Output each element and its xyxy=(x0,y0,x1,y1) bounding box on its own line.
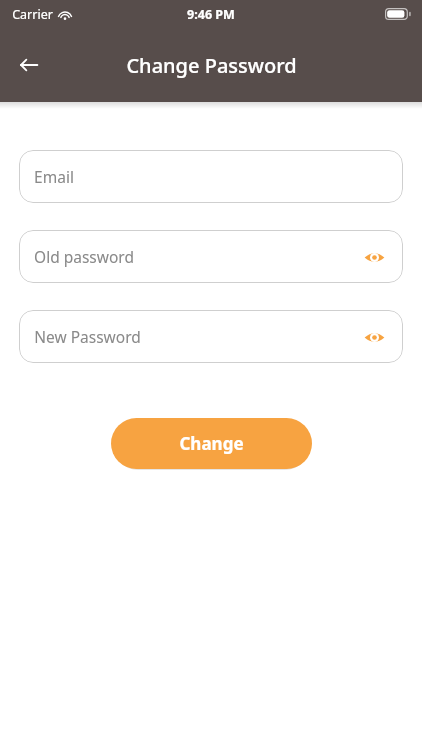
staticText: Change xyxy=(179,432,244,455)
button[interactable]: Email xyxy=(19,150,403,203)
staticText: 9:46 PM xyxy=(187,6,235,23)
staticText: Carrier xyxy=(12,6,53,23)
staticText: Email xyxy=(34,166,74,187)
staticText: Change Password xyxy=(126,52,297,79)
staticText: New Password xyxy=(34,326,141,347)
button[interactable]: Toggle password visibility xyxy=(357,320,391,354)
button[interactable]: New Password xyxy=(19,310,403,363)
staticText: Old password xyxy=(34,246,134,267)
button[interactable]: Toggle password visibility xyxy=(357,240,391,274)
button[interactable]: Back xyxy=(7,43,51,87)
button[interactable]: Old password xyxy=(19,230,403,283)
button[interactable]: Change xyxy=(111,418,312,469)
